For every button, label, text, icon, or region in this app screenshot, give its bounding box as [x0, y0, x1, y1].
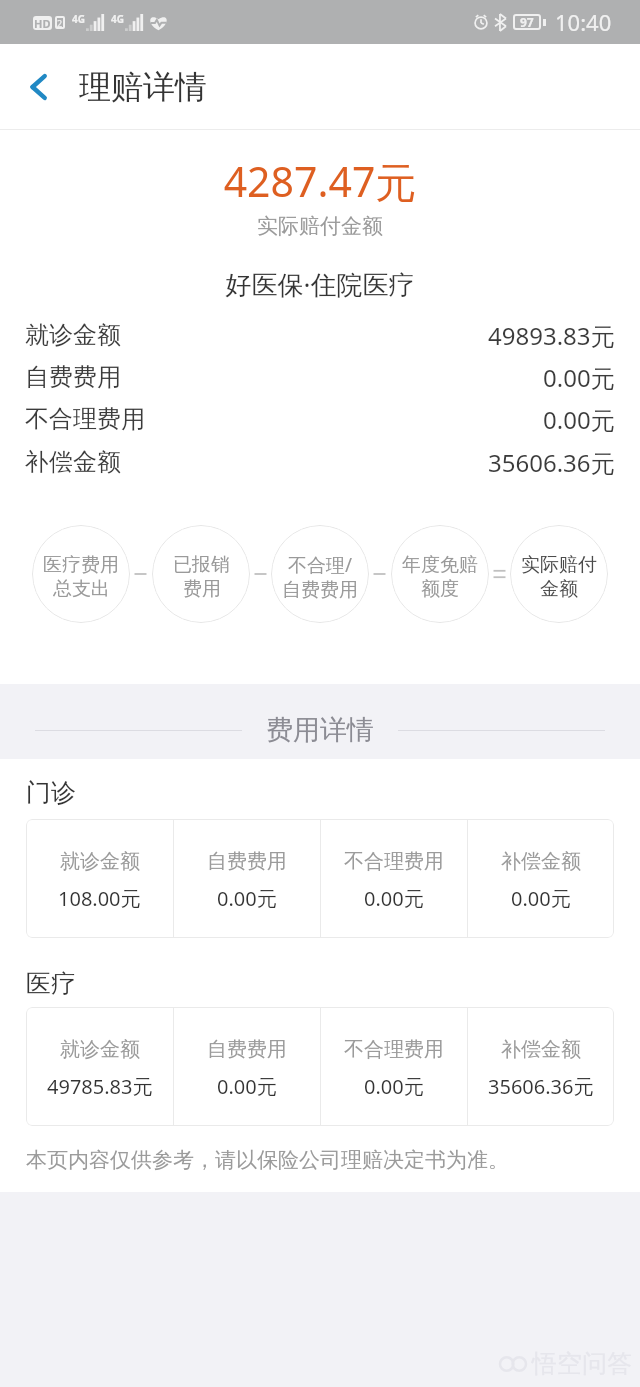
button[interactable]: Back	[10, 58, 68, 116]
staticText: 49785.83元	[47, 1073, 153, 1100]
staticText: 4G	[72, 12, 85, 26]
staticText: 自费费用	[25, 362, 121, 392]
staticText: 不合理费用	[344, 1037, 444, 1062]
staticText: 不合理费用	[25, 404, 145, 434]
staticText: 108.00元	[58, 885, 141, 912]
staticText: 49893.83元	[488, 319, 615, 352]
staticText: 补偿金额	[501, 849, 581, 874]
staticText: 0.00元	[364, 885, 424, 912]
staticText: 实际赔付金额	[0, 213, 640, 239]
staticText: 医疗费用	[43, 553, 119, 577]
staticText: 就诊金额	[25, 320, 121, 350]
staticText: 自费费用	[207, 849, 287, 874]
staticText: 金额	[540, 577, 578, 601]
staticText: 10:40	[555, 7, 612, 37]
staticText: 0.00元	[364, 1073, 424, 1100]
staticText: 35606.36元	[488, 1073, 594, 1100]
staticText: 年度免赔	[402, 553, 478, 577]
staticText: 已报销	[173, 553, 230, 577]
staticText: 门诊	[26, 777, 76, 808]
staticText: 0.00元	[217, 885, 277, 912]
staticText: 4287.47元	[0, 153, 640, 209]
staticText: 35606.36元	[488, 446, 615, 479]
staticText: 不合理费用	[344, 849, 444, 874]
staticText: 97	[520, 14, 534, 30]
staticText: 总支出	[53, 577, 110, 601]
staticText: 0.00元	[543, 361, 615, 394]
staticText: 就诊金额	[60, 849, 140, 874]
staticText: 好医保·住院医疗	[0, 266, 640, 302]
staticText: 费用	[183, 577, 221, 601]
staticText: 0.00元	[511, 885, 571, 912]
staticText: 就诊金额	[60, 1037, 140, 1062]
staticText: 不合理/	[288, 552, 353, 578]
staticText: 额度	[421, 577, 459, 601]
staticText: 补偿金额	[25, 447, 121, 477]
staticText: 自费费用	[207, 1037, 287, 1062]
staticText: 费用详情	[266, 713, 374, 747]
staticText: 实际赔付	[521, 553, 597, 577]
staticText: 本页内容仅供参考，请以保险公司理赔决定书为准。	[26, 1147, 509, 1173]
staticText: 理赔详情	[79, 67, 207, 107]
staticText: 自费费用	[282, 578, 358, 602]
staticText: 2	[57, 17, 63, 29]
staticText: 医疗	[26, 968, 76, 999]
staticText: HD	[34, 16, 51, 30]
staticText: 0.00元	[217, 1073, 277, 1100]
staticText: 悟空问答	[532, 1348, 632, 1379]
staticText: 0.00元	[543, 403, 615, 436]
staticText: 补偿金额	[501, 1037, 581, 1062]
staticText: 4G	[111, 12, 124, 26]
